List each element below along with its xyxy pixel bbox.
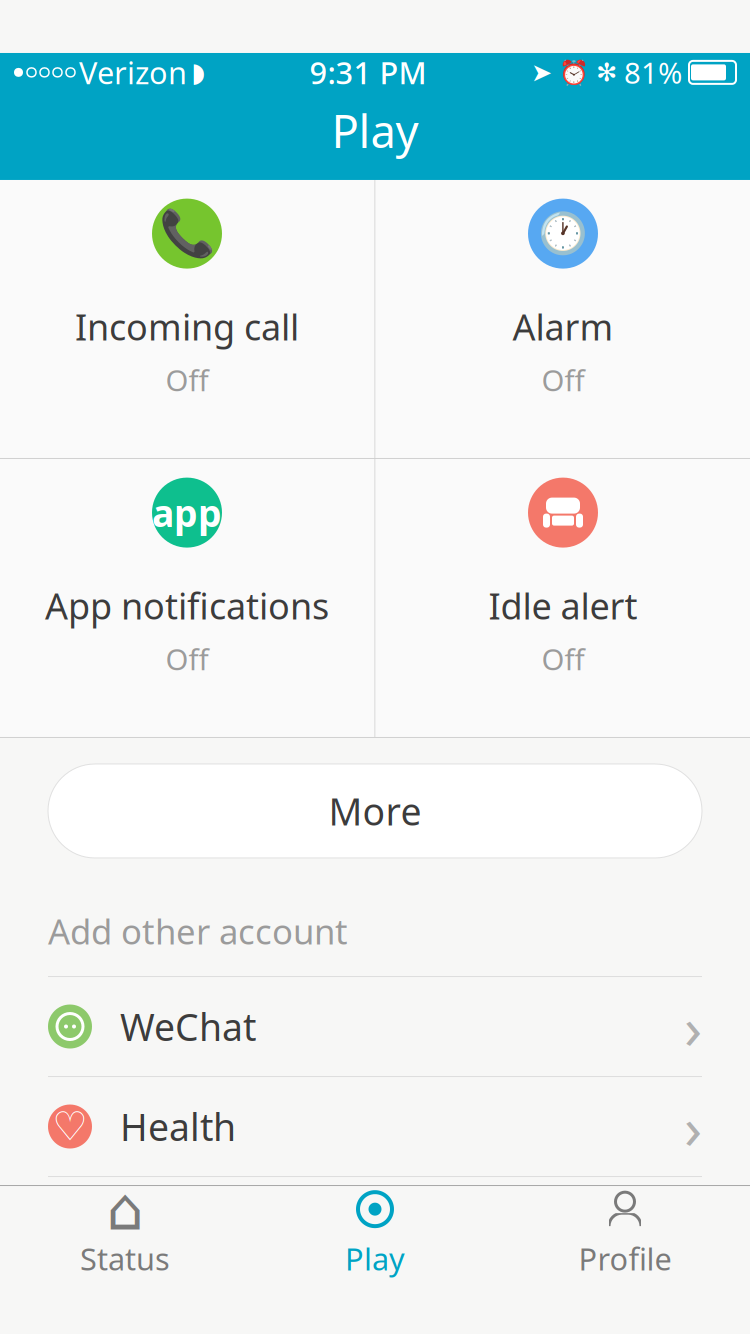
staticText: ⌂ xyxy=(106,1176,143,1242)
staticText: ♡ xyxy=(52,1104,88,1149)
staticText: ◗ xyxy=(191,57,205,87)
staticText: Off xyxy=(165,360,208,399)
staticText: ⏰ xyxy=(559,59,589,86)
staticText: Off xyxy=(541,639,584,678)
staticText: › xyxy=(684,988,702,1065)
button[interactable]: ♡ xyxy=(0,1077,750,1177)
staticText: ➤ xyxy=(531,58,552,87)
staticText: 81% xyxy=(624,53,682,92)
staticText: Profile xyxy=(578,1238,671,1279)
staticText: App notifications xyxy=(45,582,329,629)
button[interactable]: 🕐 xyxy=(375,180,750,458)
staticText: Alarm xyxy=(512,303,613,350)
staticText: Off xyxy=(541,360,584,399)
staticText: Play xyxy=(345,1238,405,1279)
staticText: 🕐 xyxy=(538,211,588,256)
staticText: app xyxy=(152,488,222,537)
button[interactable]: Idle alert xyxy=(375,459,750,737)
staticText: Idle alert xyxy=(488,582,637,629)
button[interactable]: WeChat xyxy=(0,977,750,1077)
staticText: 📞 xyxy=(159,208,215,259)
button[interactable]: ⌂ xyxy=(0,1185,250,1281)
staticText: Play xyxy=(331,100,418,161)
button[interactable]: Play xyxy=(250,1185,500,1281)
staticText: Off xyxy=(165,639,208,678)
staticText: › xyxy=(684,1088,702,1165)
staticText: Health xyxy=(120,1102,236,1151)
button[interactable]: More xyxy=(48,764,702,858)
staticText: 9:31 PM xyxy=(309,52,426,93)
staticText: More xyxy=(328,786,421,836)
button[interactable]: Profile xyxy=(500,1185,750,1281)
staticText: Incoming call xyxy=(75,303,299,350)
staticText: ✻ xyxy=(596,58,617,87)
button[interactable]: app xyxy=(0,459,374,737)
staticText: Verizon xyxy=(79,52,187,93)
staticText: Status xyxy=(80,1238,170,1279)
button[interactable]: 📞 xyxy=(0,180,374,458)
staticText: Add other account xyxy=(48,908,348,954)
staticText: WeChat xyxy=(120,1002,256,1051)
